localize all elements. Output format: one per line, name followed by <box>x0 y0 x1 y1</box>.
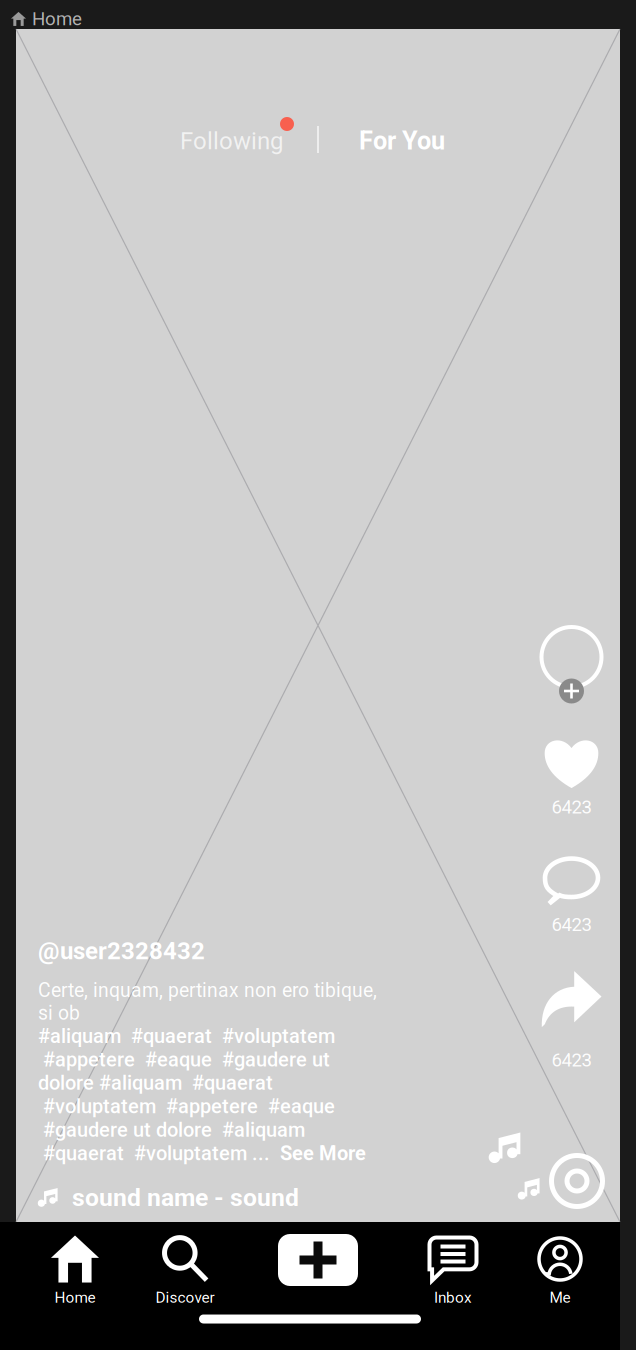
staticText: dolore #aliquam #quaerat <box>38 1071 273 1095</box>
staticText: #appetere #eaque #gaudere ut <box>38 1048 330 1071</box>
staticText: Following <box>180 127 283 155</box>
staticText: @user2328432 <box>38 937 205 965</box>
button[interactable]: Following <box>174 122 289 160</box>
staticText: Certe, inquam, pertinax non ero tibique, <box>38 979 377 1002</box>
staticText: Home <box>32 8 82 30</box>
button[interactable]: For You <box>353 121 451 161</box>
button[interactable]: Create <box>258 1232 378 1288</box>
staticText: 6423 <box>551 914 591 935</box>
button[interactable]: Home <box>15 1233 135 1309</box>
staticText: Discover <box>155 1288 214 1306</box>
button[interactable]: 6423 <box>525 733 617 823</box>
button[interactable]: See More <box>280 1142 366 1165</box>
staticText: Me <box>549 1288 570 1306</box>
staticText: Home <box>54 1288 95 1306</box>
staticText: sound name - sound <box>72 1183 299 1212</box>
staticText: For You <box>359 126 445 156</box>
staticText: 6423 <box>551 796 591 818</box>
staticText: #gaudere ut dolore #aliquam <box>38 1118 305 1142</box>
button[interactable]: 6423 <box>525 976 617 1066</box>
staticText: 6423 <box>551 1049 591 1071</box>
button[interactable]: Discover <box>125 1233 245 1309</box>
staticText: #quaerat #voluptatem ... <box>38 1142 280 1165</box>
button[interactable]: Me <box>500 1233 620 1309</box>
button[interactable]: sound name - sound <box>38 1165 299 1212</box>
staticText: Inbox <box>434 1288 472 1306</box>
staticText: #voluptatem #appetere #eaque <box>38 1095 335 1118</box>
button[interactable]: 6423 <box>525 852 617 942</box>
button[interactable]: Inbox <box>393 1233 513 1309</box>
staticText: #aliquam #quaerat #voluptatem <box>38 1024 335 1048</box>
staticText: si ob <box>38 1002 80 1024</box>
button[interactable]: Follow user <box>530 621 612 709</box>
staticText: See More <box>280 1142 366 1165</box>
